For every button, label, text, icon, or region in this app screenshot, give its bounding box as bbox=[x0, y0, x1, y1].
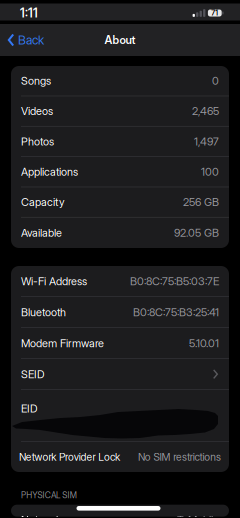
button[interactable]: EID bbox=[11, 390, 229, 442]
staticText: B0:8C:75:B3:25:41 bbox=[133, 305, 219, 319]
staticText: 71 bbox=[211, 9, 218, 17]
staticText: Songs bbox=[21, 74, 51, 87]
staticText: 92.05 GB bbox=[174, 226, 219, 239]
button[interactable]: Songs bbox=[11, 66, 229, 96]
staticText: 5.10.01 bbox=[189, 336, 219, 350]
staticText: No SIM restrictions bbox=[138, 451, 221, 463]
button[interactable]: Back bbox=[0, 33, 44, 47]
staticText: Applications bbox=[21, 165, 78, 178]
staticText: B0:8C:75:B5:03:7E bbox=[130, 274, 219, 288]
staticText: About bbox=[104, 33, 135, 47]
staticText: PHYSICAL SIM bbox=[21, 490, 77, 500]
button[interactable]: Modem Firmware bbox=[11, 328, 229, 359]
staticText: 2,465 bbox=[192, 104, 219, 118]
staticText: T-Mobile bbox=[177, 513, 219, 518]
staticText: Back bbox=[18, 33, 44, 47]
button[interactable]: Available bbox=[11, 218, 229, 248]
staticText: Modem Firmware bbox=[21, 336, 104, 350]
staticText: Capacity bbox=[21, 195, 65, 209]
staticText: Videos bbox=[21, 104, 53, 118]
button[interactable]: Wi-Fi Address bbox=[11, 266, 229, 297]
button[interactable]: Network Provider Lock bbox=[11, 442, 229, 472]
staticText: Available bbox=[21, 226, 62, 239]
staticText: Network bbox=[21, 513, 62, 518]
staticText: Wi-Fi Address bbox=[21, 274, 87, 288]
button[interactable]: Network bbox=[0, 505, 229, 517]
button[interactable]: SEID bbox=[11, 359, 229, 390]
staticText: Photos bbox=[21, 135, 54, 148]
button[interactable]: Photos bbox=[11, 127, 229, 157]
button[interactable]: Bluetooth bbox=[11, 297, 229, 328]
staticText: SEID bbox=[21, 367, 45, 381]
staticText: EID bbox=[21, 402, 38, 415]
staticText: 256 GB bbox=[183, 195, 219, 209]
staticText: 1:11 bbox=[20, 5, 38, 20]
staticText: Network Provider Lock bbox=[19, 451, 120, 463]
staticText: 1,497 bbox=[194, 135, 219, 148]
staticText: Bluetooth bbox=[21, 305, 66, 319]
button[interactable]: Applications bbox=[11, 157, 229, 187]
staticText: 0 bbox=[212, 74, 219, 87]
staticText: 100 bbox=[201, 165, 219, 178]
button[interactable]: Capacity bbox=[11, 187, 229, 218]
button[interactable]: Videos bbox=[11, 96, 229, 127]
